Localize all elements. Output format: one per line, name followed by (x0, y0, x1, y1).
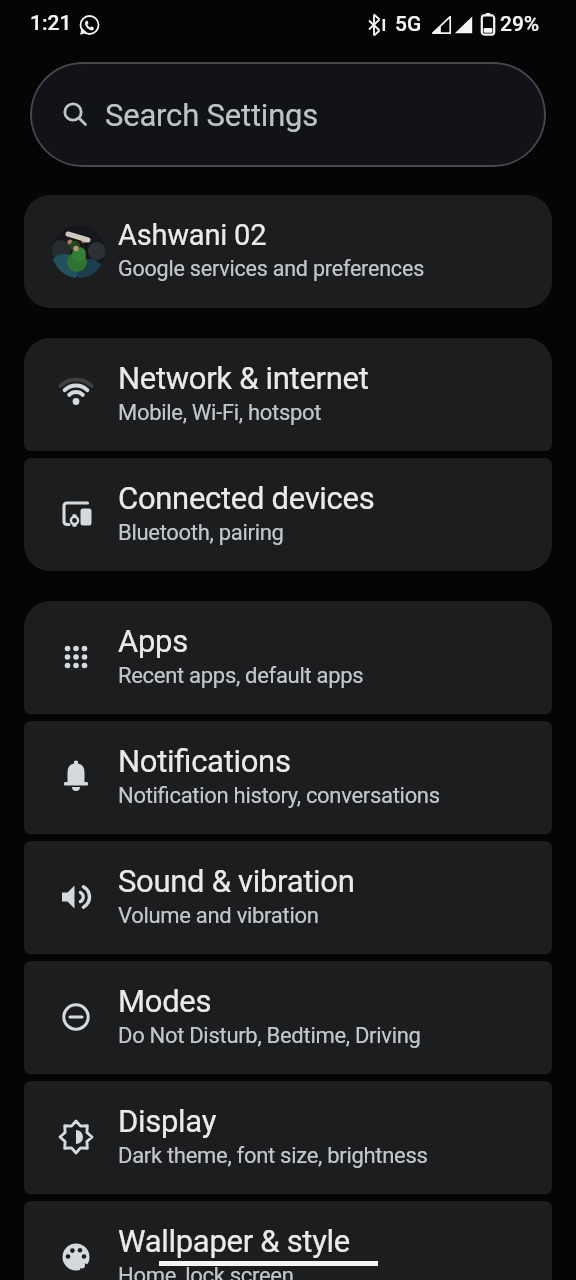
staticText: Apps (118, 623, 188, 659)
button[interactable]: Network & internet (24, 338, 552, 451)
button[interactable]: Display (24, 1081, 552, 1194)
staticText: Volume and vibration (118, 903, 319, 929)
staticText: Notifications (118, 743, 291, 779)
staticText: Recent apps, default apps (118, 663, 364, 689)
button[interactable]: Notifications (24, 721, 552, 834)
staticText: 29% (500, 12, 540, 37)
staticText: Modes (118, 983, 212, 1019)
staticText: Ashwani 02 (118, 218, 267, 252)
staticText: Sound & vibration (118, 863, 355, 899)
staticText: Network & internet (118, 360, 369, 396)
staticText: Dark theme, font size, brightness (118, 1143, 428, 1169)
staticText: Display (118, 1103, 217, 1139)
staticText: 1:21 (30, 11, 72, 36)
staticText: Mobile, Wi-Fi, hotspot (118, 400, 322, 426)
button[interactable]: Ashwani 02 (24, 195, 552, 308)
button[interactable]: Connected devices (24, 458, 552, 571)
button[interactable]: Wallpaper & style (24, 1201, 552, 1280)
staticText: Home, lock screen (118, 1263, 294, 1280)
staticText: Search Settings (105, 97, 319, 133)
staticText: 5G (395, 12, 422, 37)
staticText: Do Not Disturb, Bedtime, Driving (118, 1023, 421, 1049)
staticText: Wallpaper & style (118, 1223, 350, 1259)
staticText: Notification history, conversations (118, 783, 440, 809)
staticText: Google services and preferences (118, 256, 425, 281)
staticText: Connected devices (118, 480, 375, 516)
staticText: Bluetooth, pairing (118, 520, 284, 546)
button[interactable]: Sound & vibration (24, 841, 552, 954)
button[interactable]: Search Settings (30, 62, 546, 167)
button[interactable]: Modes (24, 961, 552, 1074)
button[interactable]: Apps (24, 601, 552, 714)
